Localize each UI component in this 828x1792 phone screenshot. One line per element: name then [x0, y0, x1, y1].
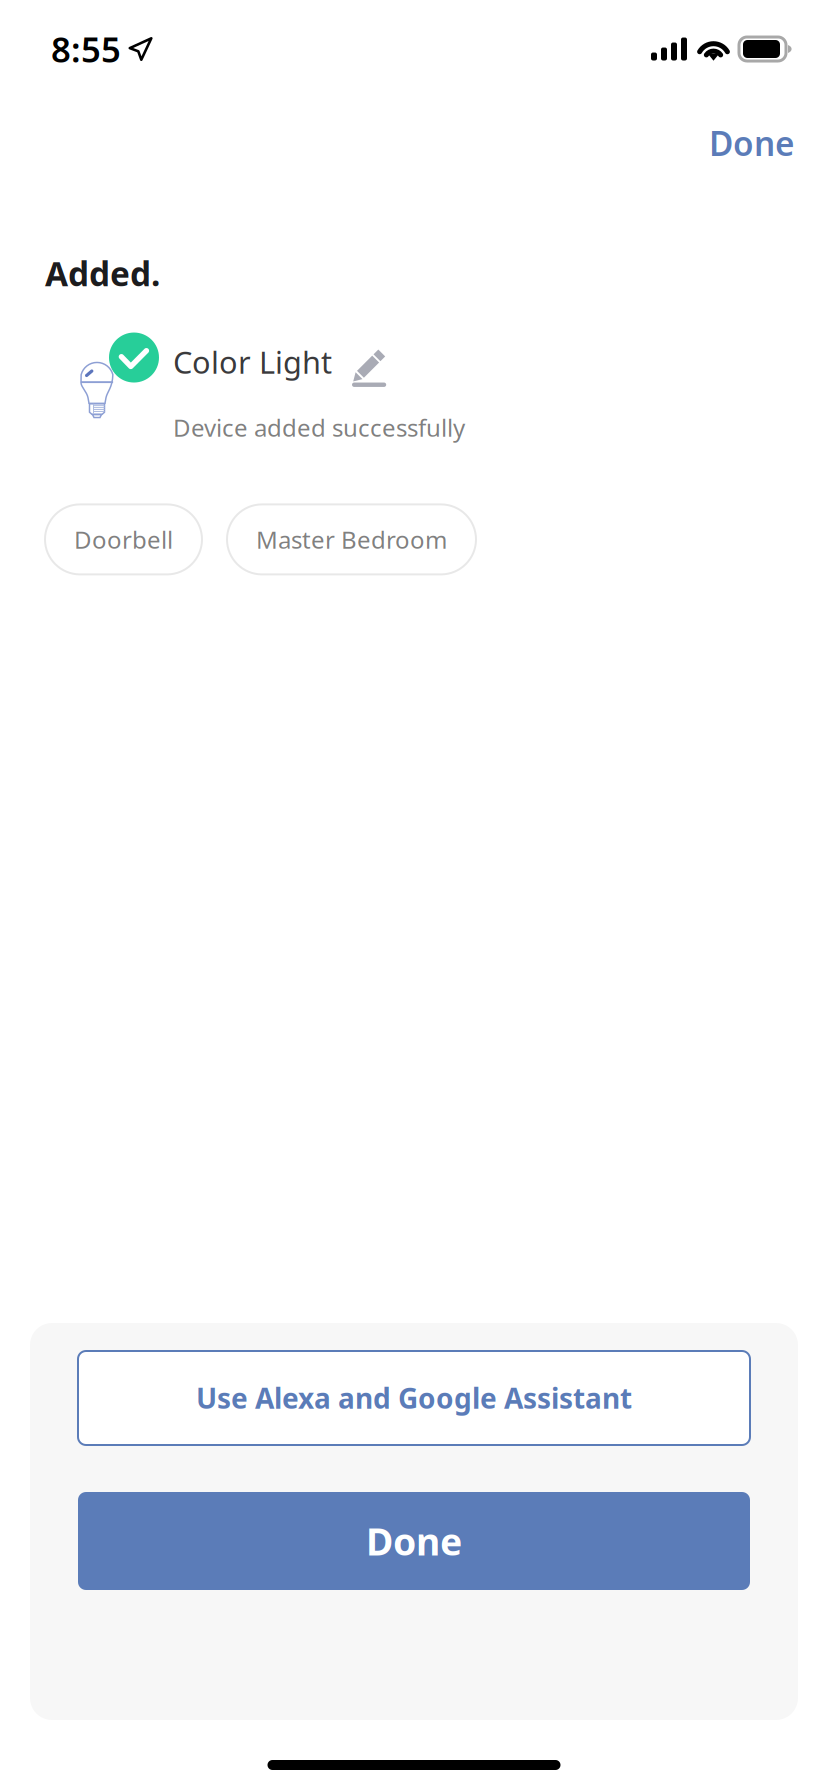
button[interactable]: Done — [693, 109, 811, 177]
staticText: Device added successfully — [173, 411, 465, 443]
staticText: Done — [709, 121, 795, 165]
button[interactable]: Rename device — [352, 348, 387, 387]
button[interactable]: Use Alexa and Google Assistant — [78, 1351, 750, 1445]
button[interactable]: Doorbell — [45, 504, 202, 574]
staticText: Color Light — [173, 341, 332, 382]
staticText: Master Bedroom — [256, 523, 447, 555]
staticText: Doorbell — [74, 523, 173, 555]
staticText: Done — [366, 1516, 462, 1566]
staticText: 8:55 — [51, 26, 121, 72]
button[interactable]: Master Bedroom — [227, 504, 476, 574]
staticText: Added. — [45, 251, 160, 296]
staticText: Use Alexa and Google Assistant — [196, 1379, 632, 1417]
button[interactable]: Done — [78, 1492, 750, 1590]
